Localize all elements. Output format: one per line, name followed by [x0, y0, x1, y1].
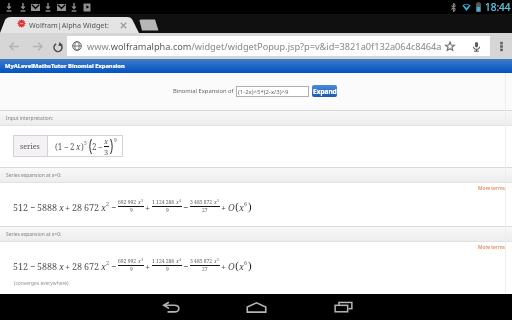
staticText: 9	[130, 207, 133, 214]
staticText: −	[30, 201, 36, 213]
staticText: 3 485 872	[190, 258, 214, 265]
button[interactable]: Home	[238, 294, 274, 320]
staticText: x	[101, 201, 106, 213]
staticText: Input interpretation:	[6, 115, 54, 122]
staticText: −	[111, 260, 117, 272]
staticText: x	[214, 199, 217, 206]
staticText: 5888	[37, 260, 58, 272]
staticText: O	[228, 201, 235, 213]
staticText: 18:44	[485, 0, 511, 14]
staticText: x	[176, 199, 179, 206]
staticText: 5	[217, 198, 220, 203]
staticText: 692 992	[118, 199, 138, 206]
staticText: Series expansion at x=0:	[6, 172, 62, 179]
staticText: )	[248, 258, 252, 273]
staticText: )	[248, 199, 252, 214]
staticText: 512	[13, 260, 29, 272]
staticText: +	[65, 201, 71, 213]
staticText: 4	[179, 198, 182, 203]
staticText: −	[111, 201, 117, 213]
button[interactable]: More options	[490, 35, 512, 57]
staticText: x	[176, 258, 179, 265]
staticText: 27	[202, 266, 208, 273]
staticText: +	[65, 260, 71, 272]
staticText: 692 992	[118, 258, 138, 265]
staticText: 9	[166, 266, 169, 273]
button[interactable]: Recent apps	[325, 294, 361, 320]
staticText: 672	[84, 201, 100, 213]
staticText: series	[20, 141, 40, 151]
staticText: 9	[166, 207, 169, 214]
staticText: (1-2x)^5*(2-x/3)^9	[238, 88, 289, 96]
staticText: 512	[13, 201, 29, 213]
staticText: 3	[141, 198, 144, 203]
button[interactable]: www.wolframalpha.com/widget/widgetPopup.…	[67, 36, 490, 56]
staticText: 2	[106, 200, 110, 207]
staticText: +	[221, 201, 227, 213]
staticText: x	[76, 141, 81, 152]
staticText: 5888	[37, 201, 58, 213]
staticText: −	[183, 260, 189, 272]
staticText: Wolfram|Alpha Widget:	[29, 20, 109, 30]
staticText: 9	[130, 266, 133, 273]
staticText: x	[239, 260, 244, 272]
staticText: 1 124 288	[152, 258, 176, 265]
staticText: 2	[106, 259, 110, 266]
staticText: 3	[104, 147, 109, 157]
staticText: +	[145, 201, 151, 213]
button[interactable]: Reload	[48, 37, 67, 56]
button[interactable]: More terms	[478, 244, 505, 251]
button[interactable]: Forward	[28, 37, 47, 56]
button[interactable]: Close tab	[119, 21, 128, 30]
staticText: x	[104, 136, 109, 146]
button[interactable]: Voice search	[468, 38, 484, 54]
staticText: 1 124 288	[152, 199, 176, 206]
staticText: 6	[244, 259, 248, 266]
staticText: x	[214, 258, 217, 265]
staticText: −	[183, 201, 189, 213]
staticText: (	[235, 258, 239, 273]
staticText: x	[101, 260, 106, 272]
staticText: 6	[244, 200, 248, 207]
staticText: Expand	[313, 87, 337, 96]
staticText: )	[81, 141, 84, 152]
staticText: −	[98, 141, 103, 152]
staticText: x	[59, 201, 64, 213]
staticText: 3	[141, 257, 144, 262]
button[interactable]: (1-2x)^5*(2-x/3)^9	[236, 86, 309, 97]
staticText: −	[64, 141, 69, 152]
staticText: MyALevelMathsTutor Binomial Expansion	[5, 62, 125, 70]
staticText: 28	[72, 201, 83, 213]
button[interactable]: Bookmark	[442, 38, 458, 54]
staticText: www.wolframalpha.com/widget/widgetPopup.…	[87, 40, 442, 53]
staticText: (1	[55, 141, 63, 152]
staticText: 28	[72, 260, 83, 272]
staticText: 5	[84, 140, 87, 147]
button[interactable]: More terms	[478, 185, 505, 192]
button[interactable]: Expand	[312, 85, 337, 97]
staticText: 672	[84, 260, 100, 272]
staticText: −	[30, 260, 36, 272]
staticText: Series expansion at x=0:	[6, 231, 62, 238]
staticText: +	[221, 260, 227, 272]
staticText: x	[239, 201, 244, 213]
staticText: 3 485 872	[190, 199, 214, 206]
staticText: (	[235, 199, 239, 214]
staticText: x	[138, 199, 141, 206]
staticText: 2	[70, 141, 75, 152]
staticText: 9	[114, 137, 117, 144]
staticText: 2	[92, 141, 97, 152]
staticText: x	[138, 258, 141, 265]
staticText: x	[59, 260, 64, 272]
staticText: 4	[179, 257, 182, 262]
staticText: 27	[202, 207, 208, 214]
staticText: 5	[217, 257, 220, 262]
staticText: (converges everywhere)	[14, 280, 69, 287]
button[interactable]: Back	[5, 37, 24, 56]
staticText: O	[228, 260, 235, 272]
staticText: +	[145, 260, 151, 272]
staticText: Binomial Expansion of	[173, 87, 234, 95]
button[interactable]: Back	[152, 294, 188, 320]
